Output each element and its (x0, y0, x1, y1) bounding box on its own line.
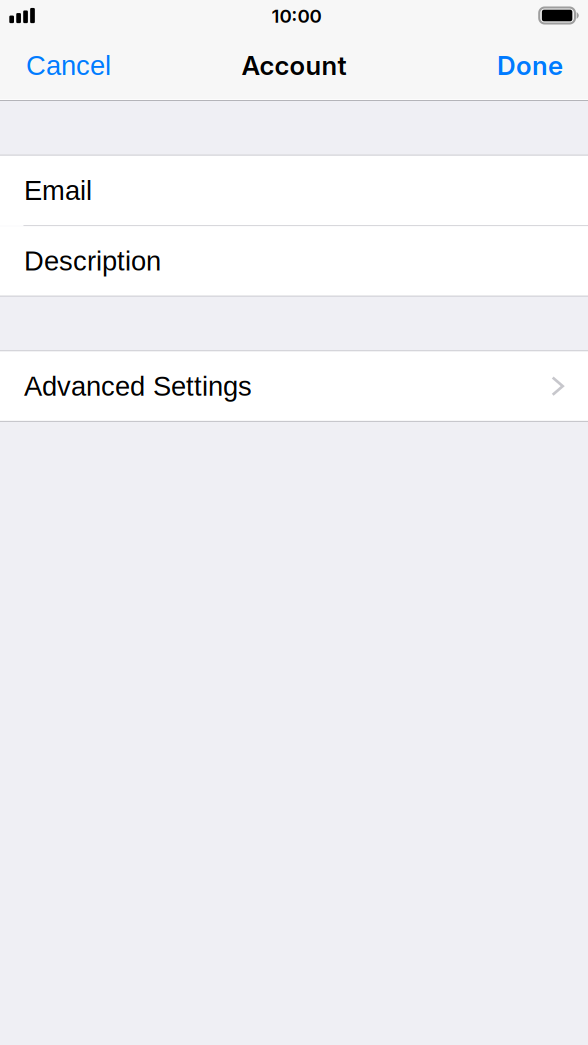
button[interactable]: Email (0, 156, 588, 225)
staticText: Account (241, 50, 346, 81)
staticText: Done (497, 50, 563, 81)
staticText: 10:00 (271, 5, 321, 27)
button[interactable]: Description (0, 226, 588, 296)
button[interactable]: Done (472, 31, 588, 100)
staticText: Cancel (26, 50, 111, 81)
staticText: Email (24, 175, 92, 206)
staticText: Advanced Settings (24, 371, 252, 401)
button[interactable]: Advanced Settings (0, 351, 588, 421)
button[interactable]: Cancel (0, 31, 137, 100)
staticText: Description (24, 246, 161, 276)
